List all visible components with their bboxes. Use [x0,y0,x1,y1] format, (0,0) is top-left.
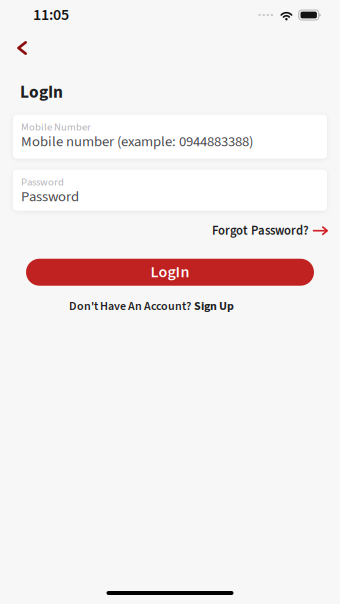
staticText: Mobile Number [21,120,91,135]
staticText: LogIn [150,261,189,284]
button[interactable]: Don't Have An Account? [69,298,234,315]
staticText: Mobile number (example: 0944883388) [21,131,253,152]
staticText: Don't Have An Account? [69,298,191,315]
staticText: 11:05 [33,4,69,26]
staticText: LogIn [20,80,63,105]
button[interactable]: Back [0,35,46,61]
staticText: Sign Up [194,298,234,315]
staticText: Forgot Password? [212,222,309,240]
staticText: Password [21,186,79,207]
button[interactable]: Forgot Password? [212,222,328,240]
staticText: Password [21,175,64,190]
button[interactable]: LogIn [26,259,314,286]
